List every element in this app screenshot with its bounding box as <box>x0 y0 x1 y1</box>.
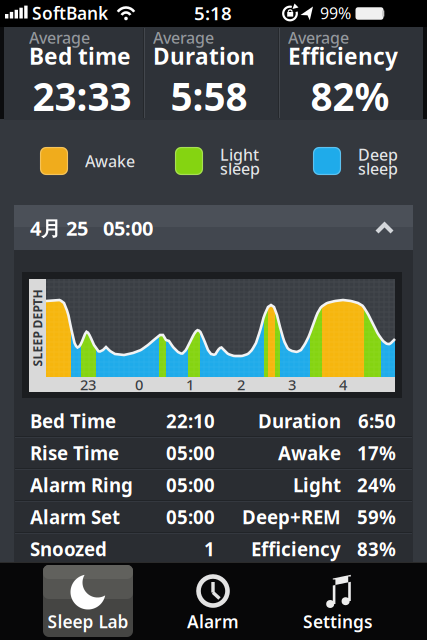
staticText: 0 <box>135 375 143 394</box>
staticText: 05:00 <box>103 215 153 241</box>
staticText: sleep <box>220 158 260 179</box>
staticText: 59% <box>357 505 396 529</box>
staticText: Alarm Ring <box>30 473 133 497</box>
staticText: SoftBank <box>32 1 108 24</box>
staticText: Rise Time <box>30 441 119 465</box>
staticText: Efficiency <box>251 537 341 561</box>
staticText: 23 <box>80 375 96 394</box>
staticText: Deep+REM <box>242 505 341 529</box>
staticText: Bed Time <box>30 409 116 433</box>
staticText: Awake <box>278 441 341 465</box>
staticText: Deep <box>358 144 398 165</box>
staticText: 5:58 <box>170 70 247 122</box>
staticText: 99% <box>320 2 351 24</box>
staticText: SLEEP DEPTH <box>0 320 76 336</box>
staticText: Light <box>220 144 259 165</box>
button[interactable]: Sleep Lab <box>25 562 150 640</box>
staticText: 05:00 <box>166 473 215 497</box>
staticText: Bed time <box>29 41 131 71</box>
staticText: Alarm <box>187 610 239 633</box>
staticText: Average <box>153 27 214 48</box>
staticText: Duration <box>258 409 341 433</box>
button[interactable]: Collapse day details <box>14 205 413 250</box>
staticText: 83% <box>357 537 396 561</box>
staticText: Light <box>293 473 341 497</box>
staticText: 5:18 <box>194 1 232 25</box>
staticText: 3 <box>288 375 296 394</box>
staticText: 2 <box>237 375 245 394</box>
staticText: Settings <box>303 610 373 633</box>
staticText: 17% <box>357 441 396 465</box>
staticText: Average <box>288 27 349 48</box>
button[interactable]: Alarm <box>150 562 275 640</box>
staticText: 4月 25 <box>30 215 88 241</box>
staticText: Alarm Set <box>30 505 120 529</box>
staticText: 22:10 <box>166 409 215 433</box>
button[interactable]: Settings <box>275 562 400 640</box>
staticText: Duration <box>153 41 255 71</box>
staticText: Sleep Lab <box>47 610 128 633</box>
staticText: Efficiency <box>288 41 398 71</box>
staticText: Average <box>29 27 90 48</box>
staticText: Awake <box>85 150 135 172</box>
staticText: 05:00 <box>166 441 215 465</box>
staticText: sleep <box>358 158 398 179</box>
staticText: 23:33 <box>32 70 131 122</box>
staticText: 1 <box>186 375 194 394</box>
staticText: 24% <box>357 473 396 497</box>
staticText: 05:00 <box>166 505 215 529</box>
staticText: 1 <box>204 537 215 561</box>
staticText: 6:50 <box>358 409 396 433</box>
staticText: 4 <box>339 375 347 394</box>
staticText: 82% <box>310 70 389 122</box>
staticText: Snoozed <box>30 537 107 561</box>
